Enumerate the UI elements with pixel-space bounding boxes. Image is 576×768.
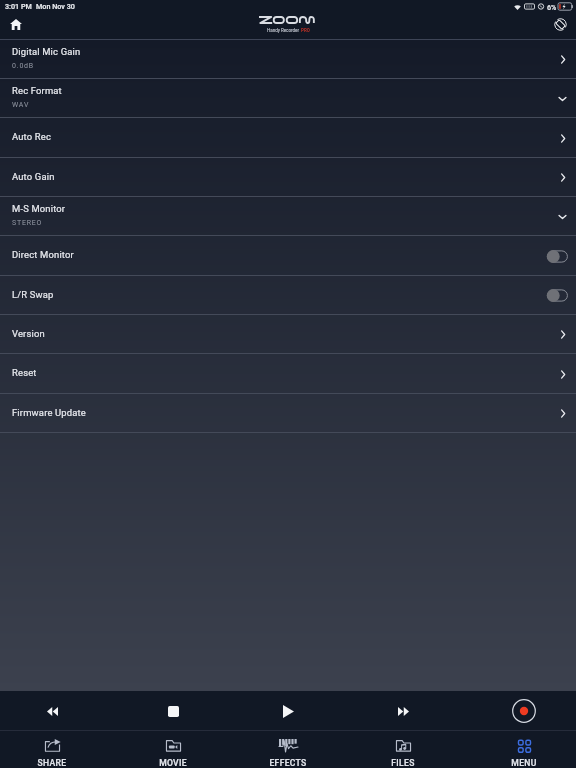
staticText: Firmware Update: [12, 407, 86, 418]
staticText: Mon Nov 30: [36, 2, 75, 10]
staticText: Auto Gain: [12, 171, 55, 182]
button[interactable]: FILES: [351, 731, 455, 768]
button[interactable]: Digital Mic Gain: [0, 40, 576, 79]
staticText: Handy Recorder: [267, 28, 301, 33]
button[interactable]: Reset: [0, 354, 576, 394]
button[interactable]: L/R Swap: [547, 289, 568, 302]
button[interactable]: Firmware Update: [0, 394, 576, 433]
button[interactable]: MOVIE: [121, 731, 225, 768]
button[interactable]: Stop: [121, 691, 225, 731]
staticText: Auto Rec: [12, 131, 52, 142]
button[interactable]: Fast forward: [351, 691, 455, 731]
staticText: 3:01 PM: [5, 2, 32, 10]
staticText: MENU: [472, 758, 576, 768]
staticText: 0.0dB: [12, 62, 35, 70]
button[interactable]: Direct Monitor: [0, 236, 576, 276]
button[interactable]: Screen rotation lock: [550, 14, 570, 34]
button[interactable]: Version: [0, 315, 576, 354]
button[interactable]: Home: [6, 14, 26, 34]
staticText: SHARE: [0, 758, 104, 768]
staticText: 6%: [547, 3, 557, 11]
staticText: STEREO: [12, 219, 43, 227]
button[interactable]: EFFECTS: [236, 731, 340, 768]
staticText: Direct Monitor: [12, 249, 74, 260]
button[interactable]: Rewind: [0, 691, 104, 731]
staticText: Digital Mic Gain: [12, 46, 81, 57]
staticText: WAV: [12, 101, 30, 109]
staticText: Reset: [12, 367, 37, 378]
button[interactable]: L/R Swap: [0, 276, 576, 315]
staticText: L/R Swap: [12, 289, 54, 300]
staticText: FILES: [351, 758, 455, 768]
button[interactable]: Auto Gain: [0, 158, 576, 197]
button[interactable]: Rec Format: [0, 79, 576, 118]
staticText: M-S Monitor: [12, 203, 66, 214]
button[interactable]: Record: [472, 691, 576, 731]
button[interactable]: Direct Monitor: [547, 250, 568, 263]
button[interactable]: SHARE: [0, 731, 104, 768]
button[interactable]: M-S Monitor: [0, 197, 576, 236]
staticText: MOVIE: [121, 758, 225, 768]
button[interactable]: Auto Rec: [0, 118, 576, 158]
staticText: Rec Format: [12, 85, 62, 96]
staticText: Version: [12, 328, 45, 339]
staticText: EFFECTS: [236, 758, 340, 768]
staticText: PRO: [301, 28, 310, 33]
button[interactable]: Play: [236, 691, 340, 731]
button[interactable]: MENU: [472, 731, 576, 768]
